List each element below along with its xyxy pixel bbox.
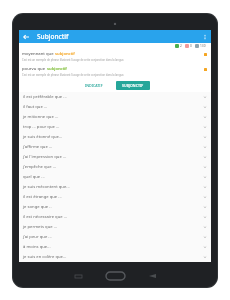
button[interactable]: je suis étonné que...	[19, 132, 211, 142]
staticText: j'affirme que ...	[23, 144, 203, 150]
button[interactable]: Favorite	[202, 51, 208, 57]
button[interactable]: Back	[19, 30, 32, 43]
staticText: subjonctif	[55, 51, 75, 57]
staticText: Subjonctif	[37, 32, 69, 41]
button[interactable]: j'ai l'impression que ...	[19, 152, 211, 162]
staticText: j'ai l'impression que ...	[23, 154, 203, 160]
button[interactable]: il est étrange que ...	[19, 192, 211, 202]
staticText: Ceci est un exemple de phrase illustrant…	[22, 58, 125, 62]
button[interactable]: j'ai peur que ...	[19, 232, 211, 242]
staticText: je songe que ..	[23, 204, 203, 210]
staticText: je suis mécontent que...	[23, 184, 203, 190]
staticText: 0	[190, 44, 192, 48]
button[interactable]: Favorite	[202, 66, 208, 72]
staticText: je permets que ...	[23, 224, 203, 230]
button[interactable]: j'empêche que ...	[19, 162, 211, 172]
staticText: il est étrange que ...	[23, 194, 203, 200]
button[interactable]: moyennant que	[19, 49, 211, 64]
button[interactable]: j'affirme que ...	[19, 142, 211, 152]
staticText: 2	[180, 44, 182, 48]
staticText: Ceci est un exemple de phrase illustrant…	[22, 73, 125, 77]
staticText: j'empêche que ...	[23, 164, 203, 170]
button[interactable]: il est nécessaire que ...	[19, 212, 211, 222]
staticText: je suis étonné que...	[23, 134, 203, 140]
staticText: à moins que...	[23, 244, 203, 250]
button[interactable]: je songe que ..	[19, 202, 211, 212]
button[interactable]: Recents	[75, 275, 82, 278]
staticText: j'ai peur que ...	[23, 234, 203, 240]
button[interactable]: à moins que...	[19, 242, 211, 252]
staticText: quel que ...	[23, 174, 203, 180]
button[interactable]: SUBJONCTIF	[116, 81, 150, 90]
staticText: subjonctif	[47, 66, 67, 72]
staticText: 130	[200, 44, 206, 48]
button[interactable]: je permets que ...	[19, 222, 211, 232]
staticText: il est préférable que ...	[23, 94, 203, 100]
button[interactable]: je suis en colère que...	[19, 252, 211, 262]
staticText: pourvu que	[22, 66, 47, 72]
button[interactable]: quel que ...	[19, 172, 211, 182]
button[interactable]: pourvu que	[19, 64, 211, 79]
staticText: trop ... pour que ...	[23, 124, 203, 130]
button[interactable]: Home	[106, 272, 125, 280]
staticText: il faut que ...	[23, 104, 203, 110]
button[interactable]: More options	[198, 30, 211, 43]
button[interactable]: il faut que ...	[19, 102, 211, 112]
button[interactable]: il est préférable que ...	[19, 92, 211, 102]
button[interactable]: Back	[149, 274, 156, 278]
button[interactable]: INDICATIF	[80, 81, 108, 90]
staticText: moyennant que	[22, 51, 55, 57]
staticText: il est nécessaire que ...	[23, 214, 203, 220]
staticText: je mitionne que ...	[23, 114, 203, 120]
button[interactable]: je mitionne que ...	[19, 112, 211, 122]
button[interactable]: trop ... pour que ...	[19, 122, 211, 132]
staticText: INDICATIF	[85, 83, 103, 88]
staticText: SUBJONCTIF	[122, 83, 144, 88]
staticText: je suis en colère que...	[23, 254, 203, 260]
button[interactable]: je suis mécontent que...	[19, 182, 211, 192]
